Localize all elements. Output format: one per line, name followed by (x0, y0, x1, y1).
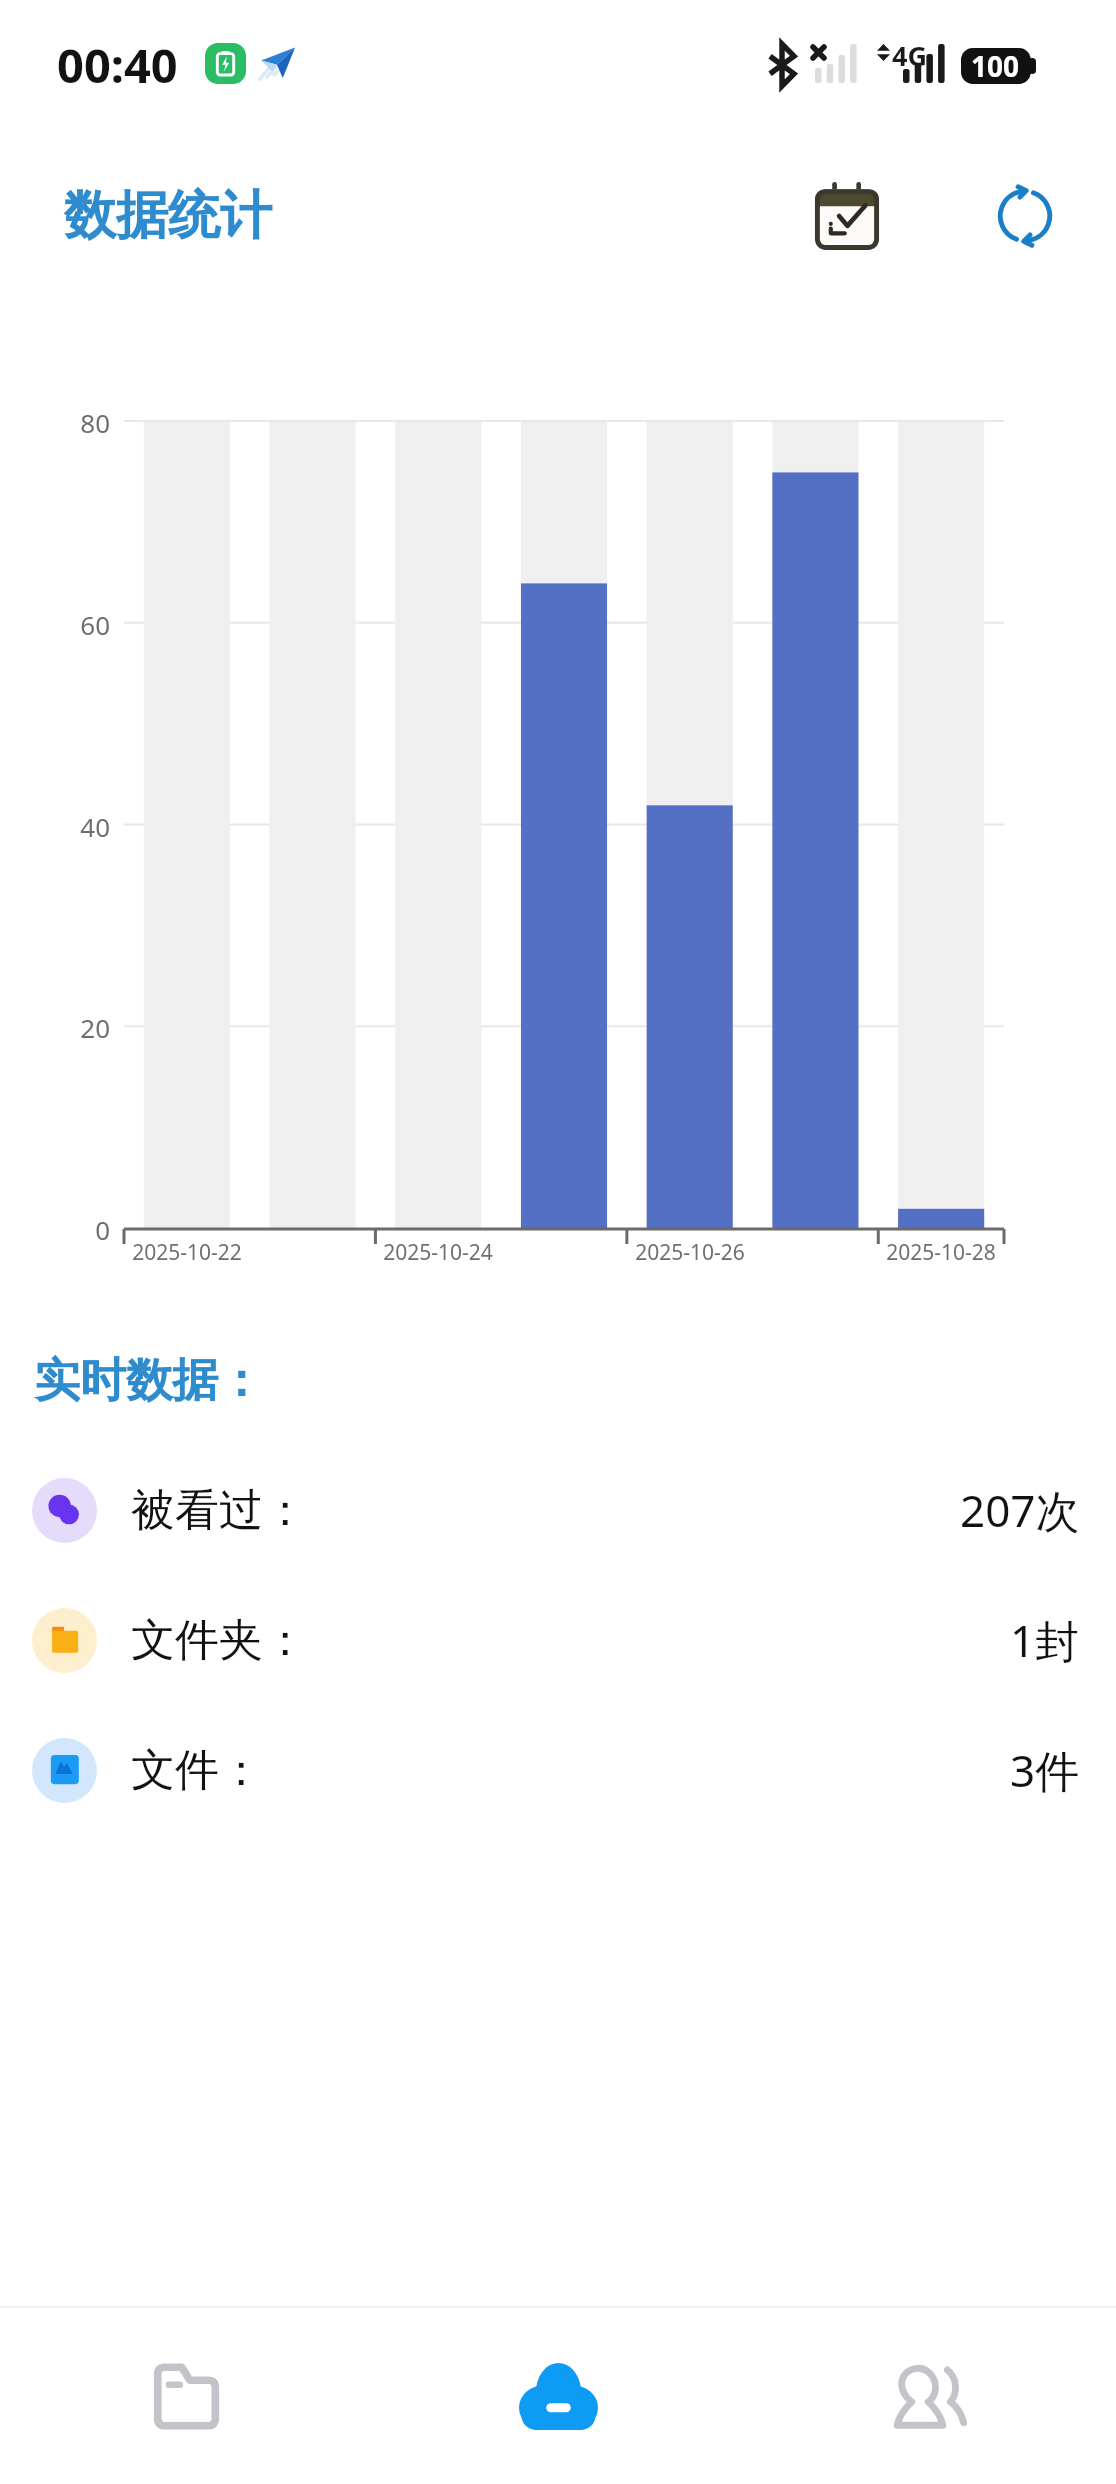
staticText: 3件 (1010, 1740, 1080, 1800)
button[interactable]: 文件： (0, 1705, 1116, 1835)
staticText: 被看过： (131, 1483, 307, 1538)
staticText: 2025-10-28 (831, 1238, 1051, 1267)
staticText: 数据统计 (64, 183, 272, 249)
staticText: 文件： (131, 1743, 263, 1798)
staticText: 40 (0, 809, 110, 844)
staticText: 00:40 (57, 33, 178, 97)
staticText: 0 (0, 1212, 110, 1247)
staticText: 实时数据： (34, 1352, 264, 1410)
staticText: 2025-10-22 (77, 1238, 297, 1267)
staticText: 2025-10-26 (580, 1238, 800, 1267)
staticText: 80 (0, 405, 110, 440)
button[interactable]: 被看过： (0, 1445, 1116, 1575)
button[interactable]: Files (0, 2308, 372, 2484)
button[interactable]: 文件夹： (0, 1575, 1116, 1705)
staticText: 1封 (1010, 1610, 1080, 1670)
staticText: 2025-10-24 (328, 1238, 548, 1267)
staticText: 100 (971, 47, 1020, 85)
staticText: 4G (892, 37, 927, 74)
button[interactable]: Select date (787, 156, 907, 276)
staticText: 207次 (960, 1480, 1080, 1540)
staticText: 20 (0, 1010, 110, 1045)
button[interactable]: Contacts (744, 2308, 1116, 2484)
staticText: 文件夹： (131, 1613, 307, 1668)
button[interactable]: Refresh (965, 156, 1085, 276)
button[interactable]: Cloud (372, 2308, 744, 2484)
staticText: 60 (0, 607, 110, 642)
